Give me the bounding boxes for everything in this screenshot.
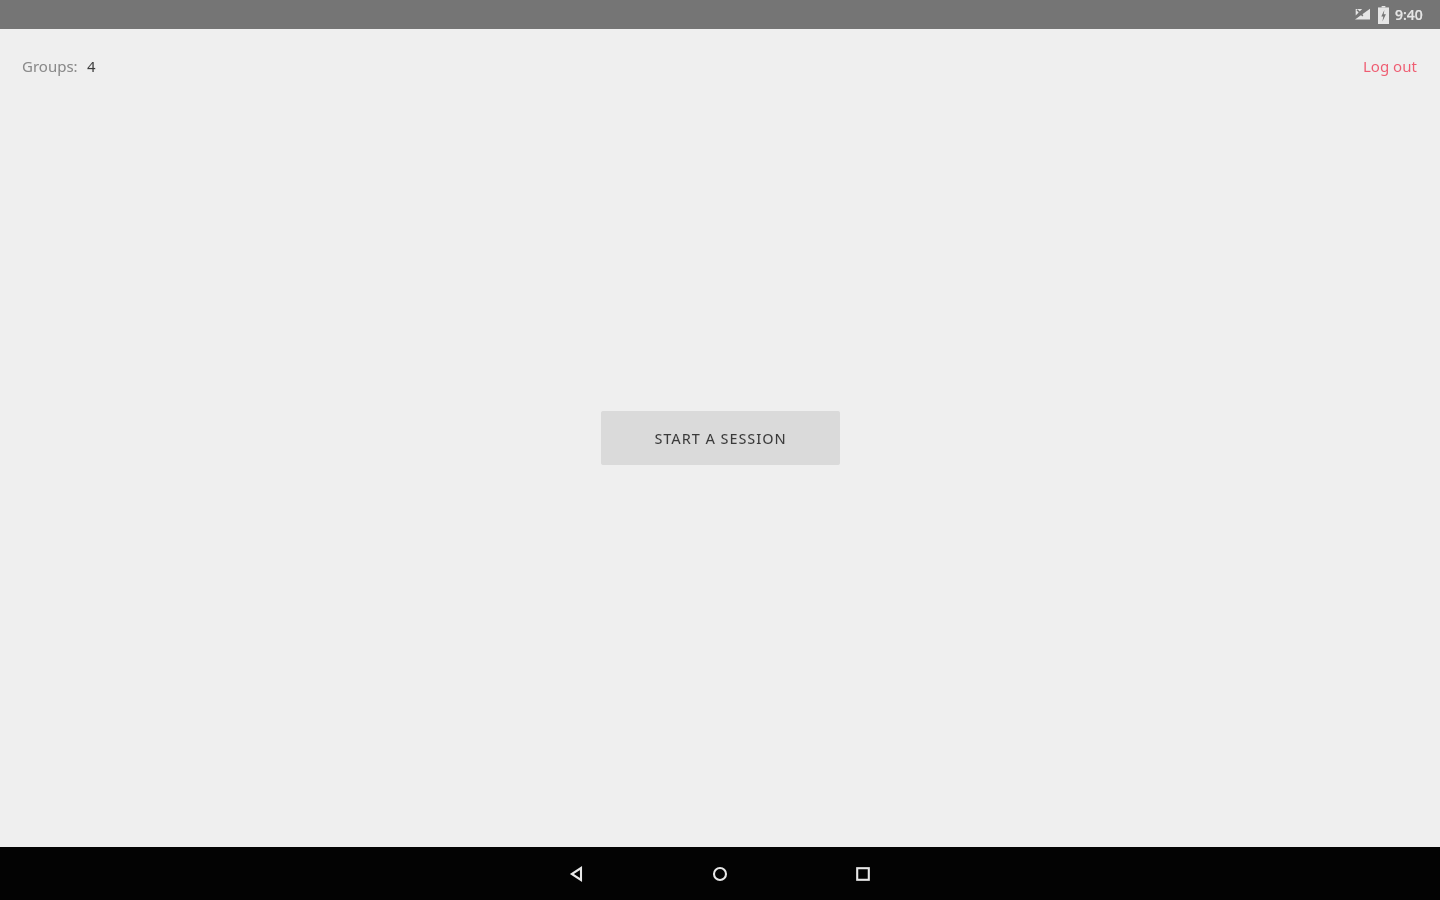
button[interactable]: Log out — [1361, 54, 1419, 78]
staticText: Log out — [1363, 56, 1417, 76]
button[interactable]: START A SESSION — [601, 411, 840, 465]
staticText: Groups: — [22, 56, 78, 76]
button[interactable]: Back — [553, 850, 601, 898]
staticText: START A SESSION — [654, 428, 787, 448]
staticText: 9:40 — [1395, 5, 1423, 24]
staticText: 4 — [87, 56, 96, 76]
button[interactable]: Recent apps — [839, 850, 887, 898]
button[interactable]: Home — [696, 850, 744, 898]
